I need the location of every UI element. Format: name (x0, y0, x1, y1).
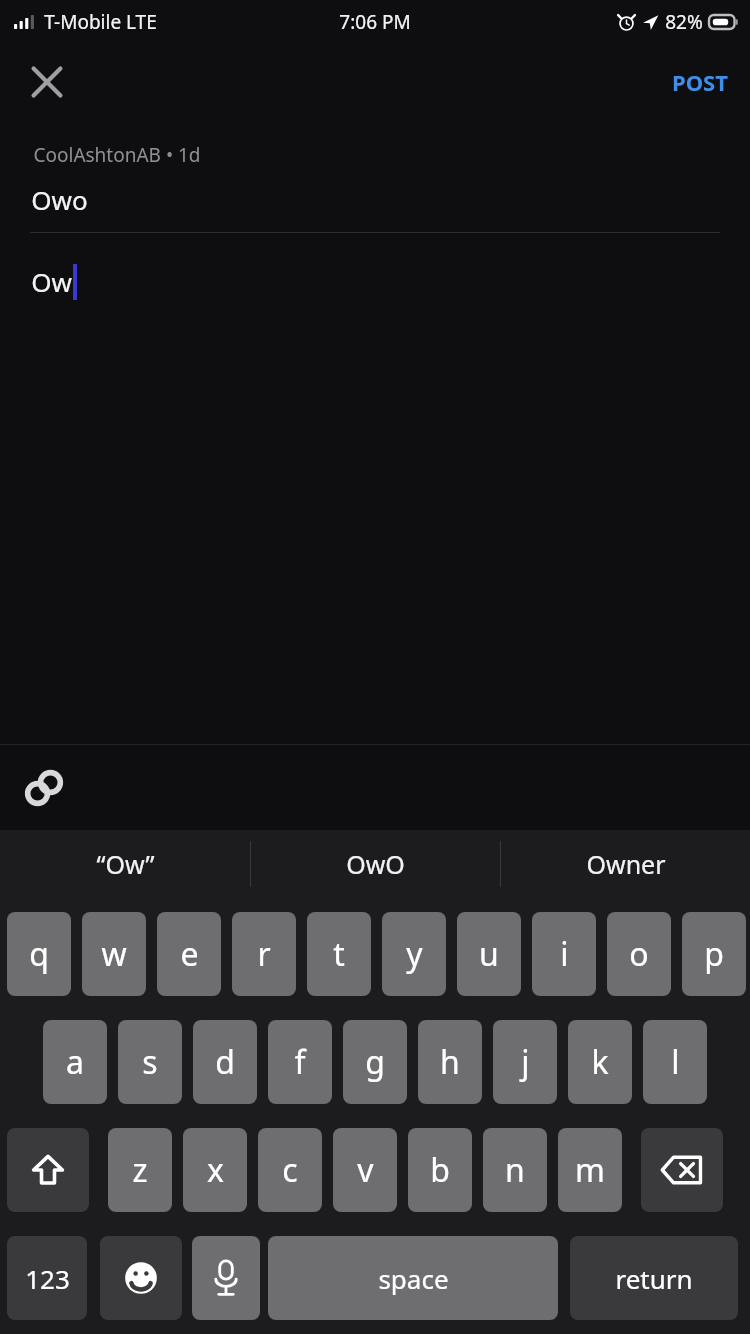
button[interactable]: 123 (7, 1236, 87, 1320)
button[interactable]: q (7, 912, 71, 996)
staticText: w (101, 932, 127, 976)
button[interactable]: OwO (251, 830, 500, 898)
staticText: x (207, 1148, 224, 1192)
button[interactable]: Ow (31, 263, 77, 299)
staticText: v (357, 1148, 374, 1192)
button[interactable]: “Ow” (0, 830, 250, 898)
staticText: Owner (586, 847, 666, 881)
button[interactable]: space (268, 1236, 558, 1320)
button[interactable]: e (157, 912, 221, 996)
button[interactable]: Emoji (100, 1236, 182, 1320)
staticText: POST (672, 67, 728, 97)
staticText: o (629, 932, 649, 976)
button[interactable]: Attach link (12, 756, 76, 820)
staticText: f (294, 1040, 306, 1084)
staticText: j (521, 1040, 530, 1084)
button[interactable]: Shift (7, 1128, 89, 1212)
staticText: b (430, 1148, 450, 1192)
button[interactable]: x (183, 1128, 247, 1212)
staticText: k (591, 1040, 609, 1084)
staticText: p (704, 932, 724, 976)
staticText: r (257, 932, 271, 976)
button[interactable]: i (532, 912, 596, 996)
button[interactable]: v (333, 1128, 397, 1212)
staticText: return (615, 1261, 693, 1296)
staticText: Owo (31, 182, 88, 217)
staticText: s (142, 1040, 158, 1084)
button[interactable]: Backspace (641, 1128, 723, 1212)
staticText: t (333, 932, 345, 976)
staticText: h (440, 1040, 460, 1084)
button[interactable]: POST (660, 59, 740, 105)
staticText: 82% (665, 9, 703, 35)
staticText: Ow (31, 264, 72, 299)
button[interactable]: n (483, 1128, 547, 1212)
staticText: y (406, 932, 423, 976)
button[interactable]: u (457, 912, 521, 996)
button[interactable]: s (118, 1020, 182, 1104)
button[interactable]: return (570, 1236, 738, 1320)
staticText: CoolAshtonAB • 1d (33, 142, 201, 168)
staticText: c (282, 1148, 298, 1192)
button[interactable]: t (307, 912, 371, 996)
button[interactable]: o (607, 912, 671, 996)
staticText: q (29, 932, 49, 976)
staticText: i (560, 932, 569, 976)
button[interactable]: y (382, 912, 446, 996)
button[interactable]: f (268, 1020, 332, 1104)
button[interactable]: j (493, 1020, 557, 1104)
staticText: “Ow” (96, 847, 155, 881)
button[interactable]: l (643, 1020, 707, 1104)
staticText: n (505, 1148, 525, 1192)
button[interactable]: d (193, 1020, 257, 1104)
button[interactable]: r (232, 912, 296, 996)
button[interactable]: g (343, 1020, 407, 1104)
staticText: space (378, 1261, 449, 1296)
staticText: z (132, 1148, 148, 1192)
staticText: e (180, 932, 199, 976)
button[interactable]: Close (14, 49, 80, 115)
staticText: l (671, 1040, 680, 1084)
staticText: u (479, 932, 499, 976)
staticText: 7:06 PM (339, 9, 411, 35)
button[interactable]: k (568, 1020, 632, 1104)
staticText: d (215, 1040, 235, 1084)
staticText: a (66, 1040, 84, 1084)
button[interactable]: b (408, 1128, 472, 1212)
staticText: g (365, 1040, 385, 1084)
button[interactable]: p (682, 912, 746, 996)
button[interactable]: Owner (501, 830, 750, 898)
button[interactable]: m (558, 1128, 622, 1212)
button[interactable]: a (43, 1020, 107, 1104)
button[interactable]: Dictation (192, 1236, 260, 1320)
button[interactable]: c (258, 1128, 322, 1212)
button[interactable]: h (418, 1020, 482, 1104)
staticText: OwO (346, 847, 405, 881)
staticText: 123 (25, 1261, 70, 1296)
button[interactable]: w (82, 912, 146, 996)
button[interactable]: z (108, 1128, 172, 1212)
staticText: T-Mobile LTE (44, 9, 157, 35)
staticText: m (575, 1148, 605, 1192)
